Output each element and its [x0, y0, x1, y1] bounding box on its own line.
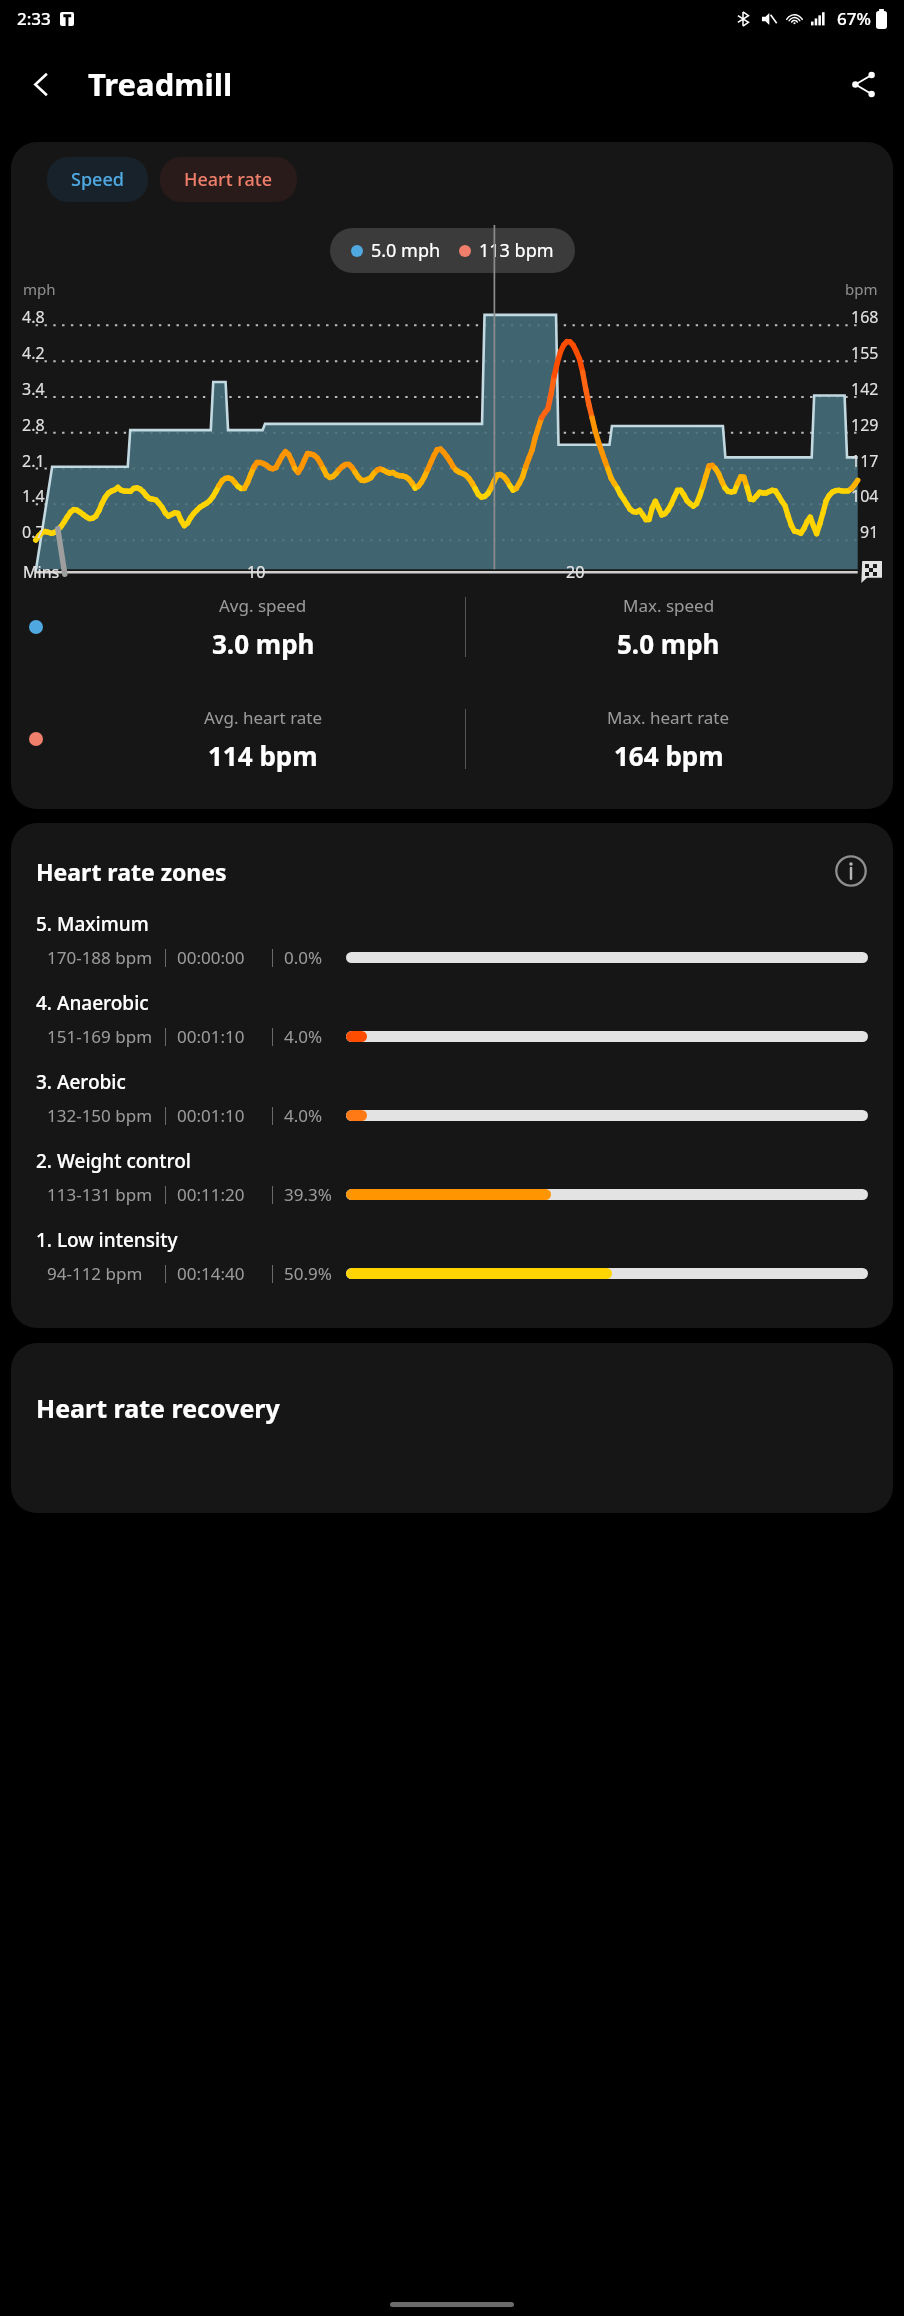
- staticText: 3. Aerobic: [36, 1069, 126, 1095]
- staticText: Max. heart rate: [607, 706, 730, 729]
- staticText: 4.0%: [284, 1025, 340, 1048]
- staticText: 00:11:20: [177, 1183, 272, 1206]
- staticText: 4. Anaerobic: [36, 990, 149, 1016]
- staticText: 94-112 bpm: [47, 1262, 165, 1285]
- staticText: 155: [851, 342, 879, 364]
- staticText: 5. Maximum: [36, 911, 149, 937]
- staticText: 1.4: [22, 485, 45, 507]
- staticText: Heart rate recovery: [36, 1391, 280, 1425]
- staticText: 4.2: [22, 342, 45, 364]
- staticText: bpm: [845, 279, 878, 299]
- staticText: 1. Low intensity: [36, 1227, 178, 1253]
- staticText: 00:14:40: [177, 1262, 272, 1285]
- button[interactable]: Back: [12, 55, 70, 113]
- staticText: 168: [851, 306, 879, 328]
- staticText: 117: [851, 450, 879, 472]
- staticText: 113 bpm: [479, 238, 554, 263]
- staticText: 151-169 bpm: [47, 1025, 165, 1048]
- staticText: 2.8: [22, 414, 45, 436]
- staticText: 4.0%: [284, 1104, 340, 1127]
- staticText: 50.9%: [284, 1262, 340, 1285]
- staticText: 2:33: [17, 7, 51, 30]
- staticText: Avg. heart rate: [204, 706, 323, 729]
- staticText: 39.3%: [284, 1183, 340, 1206]
- staticText: 129: [851, 414, 879, 436]
- staticText: 3.0 mph: [212, 626, 315, 661]
- button[interactable]: 3. Aerobic: [11, 1069, 893, 1148]
- staticText: 2. Weight control: [36, 1148, 191, 1174]
- staticText: 4.8: [22, 306, 45, 328]
- staticText: 0.0%: [284, 946, 340, 969]
- button[interactable]: Information about heart rate zones: [829, 849, 873, 893]
- staticText: 104: [851, 485, 879, 507]
- staticText: Speed: [71, 167, 124, 192]
- button[interactable]: Heart rate recovery: [11, 1343, 893, 1513]
- staticText: Avg. speed: [219, 594, 307, 617]
- button[interactable]: 5. Maximum: [11, 911, 893, 990]
- staticText: 2.1: [22, 450, 45, 472]
- staticText: 142: [851, 378, 879, 400]
- staticText: Heart rate: [184, 167, 273, 192]
- staticText: 20: [566, 561, 585, 583]
- staticText: 67%: [837, 7, 871, 30]
- staticText: 5.0 mph: [617, 626, 720, 661]
- button[interactable]: Share: [834, 55, 892, 113]
- staticText: 3.4: [22, 378, 45, 400]
- staticText: 113-131 bpm: [47, 1183, 165, 1206]
- staticText: 10: [247, 561, 266, 583]
- button[interactable]: 1. Low intensity: [11, 1227, 893, 1306]
- staticText: 5.0 mph: [371, 238, 441, 263]
- staticText: 0.7: [22, 521, 45, 543]
- button[interactable]: 2. Weight control: [11, 1148, 893, 1227]
- button[interactable]: 4. Anaerobic: [11, 990, 893, 1069]
- staticText: 00:01:10: [177, 1025, 272, 1048]
- staticText: Heart rate zones: [36, 856, 227, 887]
- staticText: 00:01:10: [177, 1104, 272, 1127]
- staticText: Mins: [23, 561, 60, 583]
- staticText: Treadmill: [88, 63, 233, 105]
- button[interactable]: Heart rate: [160, 157, 297, 202]
- staticText: 91: [860, 521, 879, 543]
- button[interactable]: Speed: [47, 157, 148, 202]
- staticText: 164 bpm: [614, 738, 724, 773]
- staticText: Max. speed: [623, 594, 715, 617]
- staticText: 00:00:00: [177, 946, 272, 969]
- staticText: mph: [23, 279, 56, 299]
- staticText: 170-188 bpm: [47, 946, 165, 969]
- staticText: 132-150 bpm: [47, 1104, 165, 1127]
- staticText: 114 bpm: [208, 738, 318, 773]
